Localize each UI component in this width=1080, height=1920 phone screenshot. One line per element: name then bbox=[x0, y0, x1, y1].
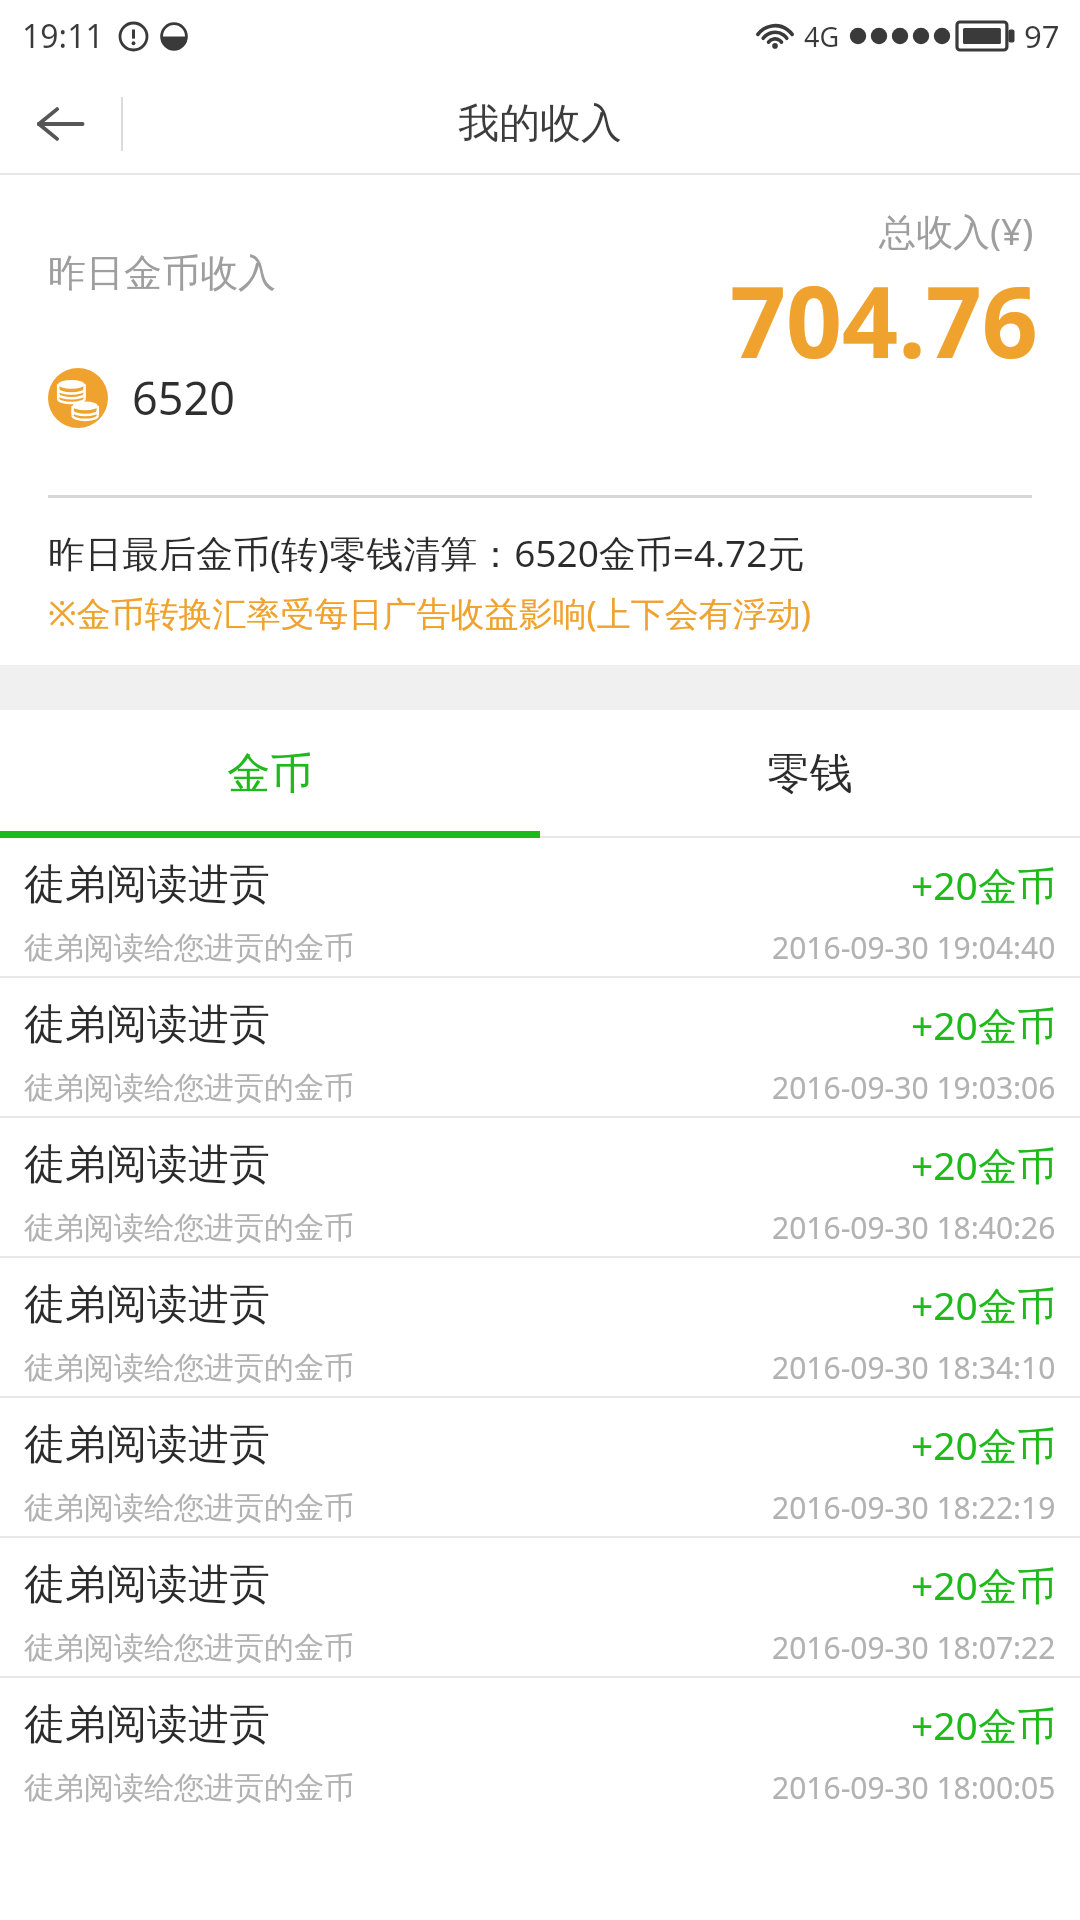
staticText: 2016-09-30 19:03:06 bbox=[772, 1067, 1056, 1108]
staticText: +20金币 bbox=[911, 1138, 1056, 1191]
button[interactable]: 徒弟阅读进贡 bbox=[0, 1118, 1080, 1256]
button[interactable]: 徒弟阅读进贡 bbox=[0, 1398, 1080, 1536]
staticText: 徒弟阅读给您进贡的金币 bbox=[24, 929, 354, 967]
staticText: 徒弟阅读给您进贡的金币 bbox=[24, 1629, 354, 1667]
staticText: 6520 bbox=[132, 367, 235, 428]
staticText: +20金币 bbox=[911, 1698, 1056, 1751]
staticText: 我的收入 bbox=[458, 98, 622, 150]
staticText: +20金币 bbox=[911, 998, 1056, 1051]
button[interactable]: 徒弟阅读进贡 bbox=[0, 1258, 1080, 1396]
staticText: 4G bbox=[804, 18, 840, 55]
staticText: 19:11 bbox=[22, 14, 104, 58]
staticText: 徒弟阅读进贡 bbox=[24, 1419, 270, 1471]
staticText: 零钱 bbox=[767, 747, 853, 801]
staticText: +20金币 bbox=[911, 858, 1056, 911]
staticText: +20金币 bbox=[911, 1558, 1056, 1611]
button[interactable]: 徒弟阅读进贡 bbox=[0, 1678, 1080, 1816]
staticText: 704.76 bbox=[730, 253, 1038, 386]
staticText: 2016-09-30 18:34:10 bbox=[772, 1347, 1056, 1388]
staticText: 徒弟阅读进贡 bbox=[24, 999, 270, 1051]
staticText: +20金币 bbox=[911, 1278, 1056, 1331]
staticText: 徒弟阅读给您进贡的金币 bbox=[24, 1209, 354, 1247]
staticText: 徒弟阅读给您进贡的金币 bbox=[24, 1489, 354, 1527]
button[interactable]: 徒弟阅读进贡 bbox=[0, 838, 1080, 976]
staticText: 2016-09-30 18:22:19 bbox=[772, 1487, 1056, 1528]
staticText: 昨日最后金币(转)零钱清算：6520金币=4.72元 bbox=[48, 527, 805, 578]
staticText: 徒弟阅读给您进贡的金币 bbox=[24, 1349, 354, 1387]
staticText: 总收入(¥) bbox=[879, 205, 1034, 256]
staticText: 徒弟阅读进贡 bbox=[24, 1699, 270, 1751]
staticText: 徒弟阅读进贡 bbox=[24, 1279, 270, 1331]
button[interactable]: Back bbox=[0, 72, 120, 175]
staticText: 徒弟阅读进贡 bbox=[24, 859, 270, 911]
button[interactable]: 徒弟阅读进贡 bbox=[0, 1538, 1080, 1676]
staticText: 徒弟阅读进贡 bbox=[24, 1139, 270, 1191]
button[interactable]: 零钱 bbox=[540, 710, 1080, 838]
staticText: ※金币转换汇率受每日广告收益影响(上下会有浮动) bbox=[48, 590, 811, 636]
staticText: 金币 bbox=[227, 747, 313, 801]
staticText: 2016-09-30 18:07:22 bbox=[772, 1627, 1056, 1668]
staticText: 昨日金币收入 bbox=[48, 249, 276, 297]
staticText: 徒弟阅读进贡 bbox=[24, 1559, 270, 1611]
staticText: 2016-09-30 18:00:05 bbox=[772, 1767, 1056, 1808]
staticText: 徒弟阅读给您进贡的金币 bbox=[24, 1069, 354, 1107]
staticText: +20金币 bbox=[911, 1418, 1056, 1471]
staticText: 2016-09-30 19:04:40 bbox=[772, 927, 1056, 968]
staticText: 徒弟阅读给您进贡的金币 bbox=[24, 1769, 354, 1807]
button[interactable]: 金币 bbox=[0, 710, 540, 838]
staticText: 97 bbox=[1024, 15, 1060, 57]
button[interactable]: 徒弟阅读进贡 bbox=[0, 978, 1080, 1116]
staticText: 2016-09-30 18:40:26 bbox=[772, 1207, 1056, 1248]
